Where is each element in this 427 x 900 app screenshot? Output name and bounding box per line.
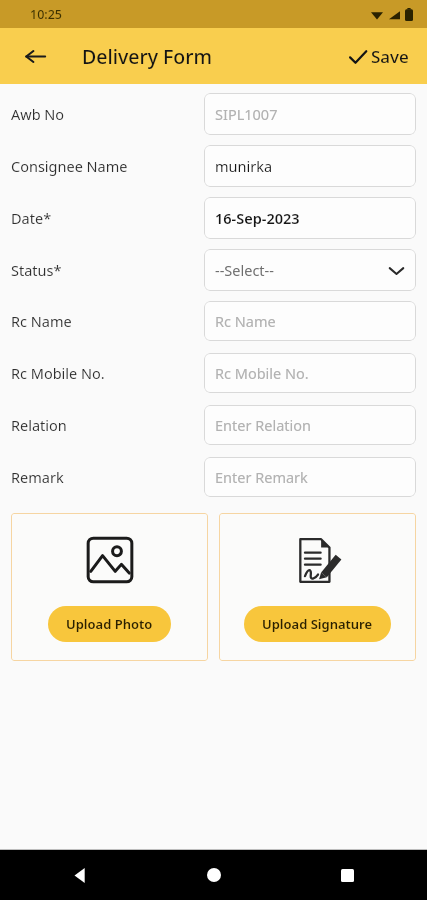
staticText: Rc Mobile No. <box>215 363 309 383</box>
staticText: Rc Mobile No. <box>11 363 204 383</box>
button[interactable]: Recents <box>325 853 369 897</box>
staticText: --Select-- <box>215 260 274 280</box>
button[interactable]: Rc Mobile No. <box>204 353 416 393</box>
button[interactable]: Save <box>343 39 415 74</box>
staticText: Relation <box>11 415 204 435</box>
staticText: Upload Signature <box>262 615 373 633</box>
staticText: 10:25 <box>30 6 63 23</box>
staticText: Delivery Form <box>82 43 212 70</box>
button[interactable]: Home <box>192 853 236 897</box>
button[interactable]: --Select-- <box>204 249 416 291</box>
staticText: SIPL1007 <box>215 104 278 124</box>
staticText: munirka <box>215 156 273 176</box>
button[interactable]: SIPL1007 <box>204 93 416 135</box>
button[interactable]: Back <box>58 853 102 897</box>
staticText: 16-Sep-2023 <box>215 208 300 228</box>
staticText: Awb No <box>11 104 204 124</box>
staticText: Enter Remark <box>215 467 308 487</box>
button[interactable]: Enter Relation <box>204 405 416 445</box>
staticText: Consignee Name <box>11 156 204 176</box>
button[interactable]: Enter Remark <box>204 457 416 497</box>
button[interactable]: 16-Sep-2023 <box>204 197 416 239</box>
staticText: Rc Name <box>215 311 276 331</box>
staticText: Save <box>371 45 409 68</box>
staticText: Date* <box>11 208 204 228</box>
button[interactable]: munirka <box>204 145 416 187</box>
staticText: Rc Name <box>11 311 204 331</box>
staticText: Status* <box>11 260 204 280</box>
button[interactable]: Upload Photo <box>48 606 171 642</box>
staticText: Enter Relation <box>215 415 311 435</box>
button[interactable]: Upload Signature <box>244 606 391 642</box>
button[interactable]: Back <box>14 35 56 77</box>
staticText: Remark <box>11 467 204 487</box>
staticText: Upload Photo <box>66 615 153 633</box>
button[interactable]: Rc Name <box>204 301 416 341</box>
